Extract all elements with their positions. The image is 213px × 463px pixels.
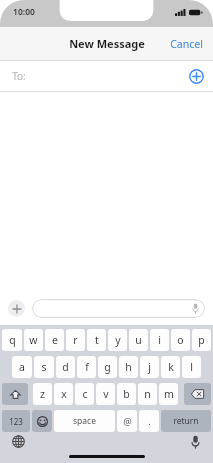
button[interactable]: v — [96, 383, 115, 405]
staticText: m — [164, 387, 174, 401]
button[interactable]: i — [150, 329, 169, 351]
staticText: e — [52, 333, 58, 347]
button[interactable]: q — [2, 329, 22, 351]
button[interactable]: d — [56, 356, 75, 378]
button[interactable]: c — [75, 383, 94, 405]
staticText: l — [190, 360, 193, 374]
staticText: k — [168, 360, 174, 374]
staticText: y — [115, 333, 121, 347]
staticText: f — [85, 360, 89, 374]
button[interactable]: b — [117, 383, 136, 405]
button[interactable]: t — [87, 329, 106, 351]
button[interactable]: Dictate — [32, 299, 205, 318]
staticText: New Message — [69, 36, 145, 51]
staticText: s — [41, 360, 47, 374]
staticText: v — [103, 387, 109, 401]
staticText: c — [82, 387, 88, 401]
staticText: q — [9, 333, 16, 347]
button[interactable]: Add attachment — [8, 300, 25, 317]
button[interactable]: Dictate — [192, 303, 199, 314]
staticText: g — [104, 360, 111, 374]
staticText: w — [29, 333, 38, 347]
staticText: d — [62, 360, 69, 374]
button[interactable]: g — [98, 356, 117, 378]
button[interactable]: h — [119, 356, 138, 378]
button[interactable]: j — [140, 356, 159, 378]
staticText: 10:00 — [13, 6, 35, 18]
staticText: @ — [123, 415, 132, 428]
staticText: Cancel — [170, 37, 203, 51]
button[interactable]: Backspace — [184, 383, 211, 405]
button[interactable]: z — [33, 383, 52, 405]
staticText: z — [40, 387, 45, 401]
staticText: space — [73, 415, 96, 427]
button[interactable]: s — [34, 356, 54, 378]
button[interactable]: To: — [0, 61, 213, 91]
button[interactable]: a — [12, 356, 32, 378]
staticText: b — [123, 387, 130, 401]
staticText: r — [73, 333, 78, 347]
button[interactable]: @ — [117, 410, 137, 432]
button[interactable]: return — [161, 410, 211, 432]
button[interactable]: Dictate — [191, 435, 200, 449]
staticText: x — [61, 387, 67, 401]
staticText: 123 — [9, 416, 23, 427]
button[interactable]: l — [182, 356, 201, 378]
staticText: i — [158, 333, 161, 347]
staticText: u — [135, 333, 142, 347]
button[interactable]: k — [161, 356, 180, 378]
button[interactable]: x — [54, 383, 73, 405]
staticText: a — [19, 360, 25, 374]
button[interactable]: Switch keyboard — [12, 435, 25, 448]
staticText: j — [148, 360, 151, 374]
button[interactable]: Cancel — [160, 30, 213, 58]
staticText: h — [125, 360, 132, 374]
staticText: n — [144, 387, 151, 401]
staticText: t — [95, 333, 99, 347]
button[interactable]: f — [77, 356, 96, 378]
button[interactable]: Shift — [2, 383, 28, 405]
staticText: p — [198, 333, 205, 347]
button[interactable]: e — [45, 329, 64, 351]
button[interactable]: y — [108, 329, 127, 351]
button[interactable]: Add contact — [189, 69, 204, 84]
staticText: return — [173, 415, 199, 427]
button[interactable]: u — [129, 329, 148, 351]
button[interactable]: 123 — [2, 410, 30, 432]
staticText: o — [177, 333, 184, 347]
button[interactable]: Emoji — [32, 410, 52, 432]
button[interactable]: n — [138, 383, 157, 405]
staticText: To: — [12, 69, 26, 83]
button[interactable]: m — [159, 383, 178, 405]
button[interactable]: p — [192, 329, 211, 351]
button[interactable]: w — [24, 329, 43, 351]
button[interactable]: space — [54, 410, 115, 432]
button[interactable]: o — [171, 329, 190, 351]
staticText: . — [148, 415, 151, 428]
button[interactable]: r — [66, 329, 85, 351]
button[interactable]: . — [139, 410, 159, 432]
